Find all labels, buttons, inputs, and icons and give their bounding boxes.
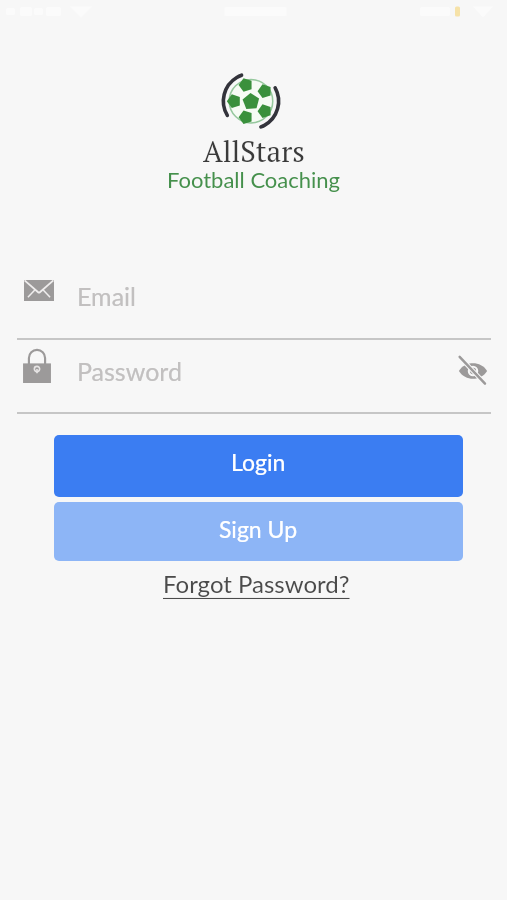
staticText: Forgot Password?	[163, 569, 350, 598]
button[interactable]: Password field	[17, 344, 437, 400]
button[interactable]: Forgot Password?	[159, 566, 354, 601]
staticText: Password	[77, 356, 182, 386]
button[interactable]: Show password	[454, 352, 492, 390]
staticText: AllStars	[203, 132, 305, 170]
button[interactable]: Login	[54, 435, 463, 497]
staticText: Email	[77, 281, 136, 311]
staticText: Football Coaching	[167, 166, 341, 192]
button[interactable]: Sign Up	[54, 502, 463, 561]
staticText: Sign Up	[219, 515, 298, 543]
button[interactable]: Email field	[17, 268, 491, 320]
staticText: Login	[231, 448, 286, 476]
